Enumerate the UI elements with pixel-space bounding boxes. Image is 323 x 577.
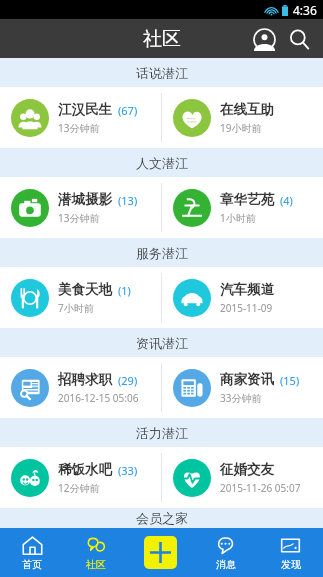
staticText: 章华艺苑 [220,191,274,208]
staticText: (1) [118,283,131,298]
button[interactable]: 在线互助 [162,87,323,148]
staticText: 4:36 [293,2,317,18]
button[interactable]: 消息 [193,528,258,577]
button[interactable]: Add [128,528,193,577]
button[interactable]: Profile [249,24,279,54]
staticText: 2016-12-15 05:06 [58,391,139,405]
staticText: (15) [280,373,300,388]
button[interactable]: 汽车频道 [162,267,323,328]
staticText: (29) [118,373,138,388]
staticText: 汽车频道 [220,281,274,298]
staticText: 在线互助 [220,101,274,118]
staticText: 招聘求职 [58,371,112,388]
staticText: 首页 [22,558,42,571]
staticText: 江汉民生 [58,101,112,118]
staticText: 1小时前 [220,211,256,225]
staticText: 美食天地 [58,281,112,298]
staticText: 发现 [281,558,301,571]
button[interactable]: 潜城摄影 [0,177,161,238]
button[interactable]: 江汉民生 [0,87,161,148]
staticText: 2015-11-09 [220,301,273,315]
staticText: 7小时前 [58,301,94,315]
staticText: 社区 [143,27,181,51]
staticText: 稀饭水吧 [58,461,112,478]
staticText: (4) [280,193,293,208]
staticText: 消息 [216,558,236,571]
staticText: 13分钟前 [58,121,100,135]
staticText: 12分钟前 [58,481,100,495]
staticText: 2015-11-26 05:07 [220,481,301,495]
button[interactable]: 招聘求职 [0,357,161,418]
staticText: 社区 [86,558,106,571]
button[interactable]: 征婚交友 [162,447,323,508]
staticText: (67) [118,103,138,118]
button[interactable]: 发现 [258,528,323,577]
staticText: 19小时前 [220,121,262,135]
staticText: 会员之家 [136,510,188,526]
button[interactable]: 稀饭水吧 [0,447,161,508]
staticText: 潜城摄影 [58,191,112,208]
staticText: (13) [118,193,138,208]
staticText: 服务潜江 [136,245,188,261]
button[interactable]: 章华艺苑 [162,177,323,238]
staticText: (33) [118,463,138,478]
staticText: 33分钟前 [220,391,262,405]
button[interactable]: 美食天地 [0,267,161,328]
staticText: 人文潜江 [136,155,188,171]
button[interactable]: Search [283,23,315,55]
staticText: 活力潜江 [136,425,188,441]
button[interactable]: 首页 [0,528,64,577]
staticText: 资讯潜江 [136,335,188,351]
button[interactable]: 社区 [64,528,128,577]
staticText: 话说潜江 [136,65,188,81]
button[interactable]: 商家资讯 [162,357,323,418]
staticText: 13分钟前 [58,211,100,225]
staticText: 征婚交友 [220,461,274,478]
staticText: 商家资讯 [220,371,274,388]
